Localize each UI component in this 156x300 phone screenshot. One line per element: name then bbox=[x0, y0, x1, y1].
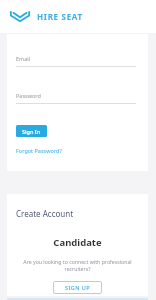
staticText: Create Account bbox=[16, 208, 74, 219]
staticText: Email bbox=[16, 55, 31, 62]
staticText: HIRE SEAT bbox=[37, 11, 83, 22]
staticText: Forgot Password? bbox=[16, 147, 62, 154]
staticText: Sign In bbox=[22, 128, 41, 135]
staticText: Are you looking to connect with professi… bbox=[22, 258, 133, 273]
button[interactable]: Forgot Password? bbox=[16, 147, 62, 154]
staticText: SIGN UP bbox=[65, 284, 90, 291]
button[interactable]: Sign In bbox=[16, 125, 47, 137]
staticText: Candidate bbox=[16, 236, 139, 249]
button[interactable]: SIGN UP bbox=[53, 281, 102, 294]
staticText: Password bbox=[16, 92, 41, 99]
